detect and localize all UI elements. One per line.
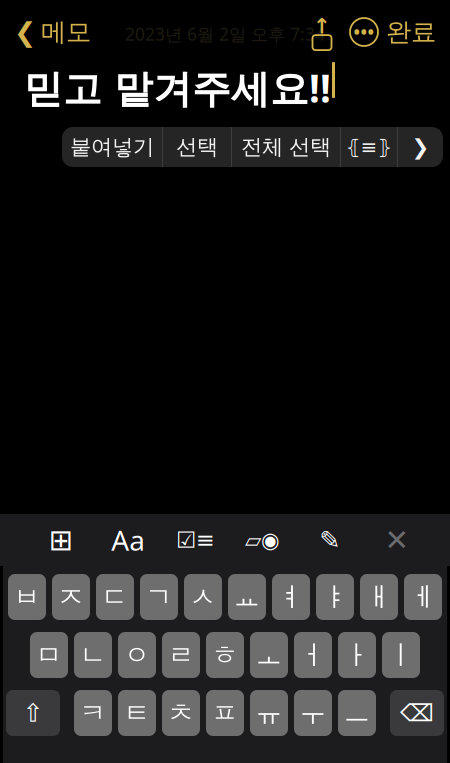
button[interactable]: ㄷ: [96, 574, 134, 620]
button[interactable]: ㅕ: [272, 574, 310, 620]
button[interactable]: ㅂ: [8, 574, 46, 620]
button[interactable]: ⇧: [6, 690, 60, 736]
button[interactable]: 붙여넣기: [62, 127, 162, 167]
button[interactable]: ㅣ: [382, 632, 420, 678]
button[interactable]: ㅜ: [294, 690, 332, 736]
staticText: ❯: [411, 135, 429, 159]
staticText: ㅍ: [211, 697, 238, 729]
button[interactable]: ㅅ: [184, 574, 222, 620]
button[interactable]: ㅍ: [206, 690, 244, 736]
staticText: ⦃≡⦄: [345, 136, 392, 158]
button[interactable]: 선택: [163, 127, 231, 167]
staticText: ㅁ: [35, 639, 62, 671]
staticText: ↑: [313, 14, 331, 38]
button[interactable]: ㅈ: [52, 574, 90, 620]
staticText: ㅕ: [277, 581, 304, 613]
button[interactable]: ㄱ: [140, 574, 178, 620]
button[interactable]: More: [342, 13, 386, 51]
button[interactable]: Table: [38, 518, 84, 562]
staticText: ❮: [14, 17, 36, 47]
staticText: ☑︎≡: [176, 527, 215, 553]
button[interactable]: Scan Text: [341, 127, 397, 167]
staticText: ㅎ: [211, 639, 238, 671]
button[interactable]: ㅏ: [338, 632, 376, 678]
button[interactable]: More options: [398, 127, 443, 167]
staticText: ⇧: [22, 699, 43, 727]
button[interactable]: ㅌ: [118, 690, 156, 736]
button[interactable]: Camera: [240, 518, 286, 562]
staticText: ㅏ: [343, 639, 370, 671]
staticText: ✕: [384, 523, 409, 557]
staticText: ㅐ: [365, 581, 392, 613]
button[interactable]: ㅠ: [250, 690, 288, 736]
staticText: ㅋ: [79, 697, 106, 729]
button[interactable]: Share: [302, 13, 342, 51]
staticText: 완료: [386, 16, 436, 47]
staticText: 전체 선택: [241, 134, 331, 160]
staticText: ㅑ: [321, 581, 348, 613]
staticText: ▱◉: [245, 528, 280, 552]
staticText: ㅗ: [255, 639, 282, 671]
staticText: ㅌ: [123, 697, 150, 729]
staticText: ⌫: [400, 699, 434, 727]
staticText: ⊞: [48, 523, 73, 557]
button[interactable]: ㄹ: [162, 632, 200, 678]
staticText: 믿고 맡겨주세요!!: [24, 62, 331, 113]
button[interactable]: ㅇ: [118, 632, 156, 678]
staticText: •••: [353, 20, 374, 43]
staticText: ㅠ: [255, 697, 282, 729]
button[interactable]: ㅡ: [338, 690, 376, 736]
button[interactable]: Format: [105, 518, 151, 562]
staticText: ㅈ: [57, 581, 84, 613]
button[interactable]: Close: [374, 518, 420, 562]
button[interactable]: ㅛ: [228, 574, 266, 620]
button[interactable]: ❮: [0, 10, 91, 53]
button[interactable]: ㅁ: [30, 632, 68, 678]
staticText: ㄱ: [145, 581, 172, 613]
staticText: ㅜ: [299, 697, 326, 729]
staticText: ㄴ: [79, 639, 106, 671]
button[interactable]: ㅗ: [250, 632, 288, 678]
staticText: ㅔ: [409, 581, 436, 613]
staticText: 선택: [176, 134, 218, 160]
staticText: ㅅ: [189, 581, 216, 613]
button[interactable]: ㄴ: [74, 632, 112, 678]
staticText: 메모: [41, 16, 91, 47]
button[interactable]: Checklist: [172, 518, 218, 562]
staticText: ㅡ: [343, 697, 370, 729]
button[interactable]: ㅋ: [74, 690, 112, 736]
staticText: ㄷ: [101, 581, 128, 613]
button[interactable]: Markup: [307, 518, 353, 562]
button[interactable]: ⌫: [390, 690, 444, 736]
staticText: 2023년 6월 2일 오후 7:34: [125, 22, 325, 45]
staticText: ㅣ: [387, 639, 414, 671]
button[interactable]: ㅓ: [294, 632, 332, 678]
staticText: Aa: [111, 521, 145, 559]
staticText: ㅓ: [299, 639, 326, 671]
button[interactable]: ㅑ: [316, 574, 354, 620]
button[interactable]: ㅐ: [360, 574, 398, 620]
staticText: ㅛ: [233, 581, 260, 613]
button[interactable]: 전체 선택: [232, 127, 340, 167]
staticText: ㄹ: [167, 639, 194, 671]
button[interactable]: ㅊ: [162, 690, 200, 736]
button[interactable]: ㅔ: [404, 574, 442, 620]
button[interactable]: 완료: [386, 10, 450, 53]
staticText: ✎: [319, 526, 340, 554]
staticText: ㅇ: [123, 639, 150, 671]
staticText: ㅂ: [13, 581, 40, 613]
button[interactable]: ㅎ: [206, 632, 244, 678]
staticText: 붙여넣기: [70, 134, 154, 160]
staticText: ㅊ: [167, 697, 194, 729]
